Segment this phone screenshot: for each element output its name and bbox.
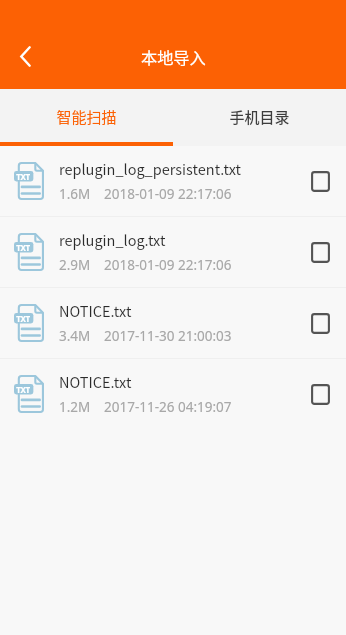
staticText: TXT	[16, 242, 30, 253]
button[interactable]: Select file	[297, 229, 343, 275]
staticText: 1.2M	[59, 398, 91, 416]
button[interactable]: Back	[1, 32, 49, 80]
staticText: 2.9M	[59, 256, 91, 274]
staticText: 本地导入	[141, 45, 206, 68]
button[interactable]: 手机目录	[173, 89, 346, 146]
button[interactable]: Select file	[297, 300, 343, 346]
staticText: 2018-01-09 22:17:06	[104, 256, 232, 274]
staticText: 2018-01-09 22:17:06	[104, 185, 232, 203]
staticText: NOTICE.txt	[59, 300, 132, 321]
staticText: TXT	[16, 313, 30, 324]
button[interactable]: Select file	[297, 158, 343, 204]
staticText: 手机目录	[229, 106, 290, 128]
staticText: 2017-11-26 04:19:07	[104, 398, 232, 416]
staticText: 2017-11-30 21:00:03	[104, 327, 232, 345]
button[interactable]: TXT	[0, 217, 346, 288]
staticText: replugin_log_persistent.txt	[59, 158, 242, 179]
staticText: 1.6M	[59, 185, 91, 203]
staticText: 智能扫描	[56, 106, 117, 128]
staticText: replugin_log.txt	[59, 229, 166, 250]
button[interactable]: Select file	[297, 371, 343, 417]
staticText: NOTICE.txt	[59, 371, 132, 392]
button[interactable]: TXT	[0, 288, 346, 359]
button[interactable]: 智能扫描	[0, 89, 173, 146]
button[interactable]: TXT	[0, 359, 346, 430]
staticText: TXT	[16, 384, 30, 395]
staticText: TXT	[16, 171, 30, 182]
staticText: 3.4M	[59, 327, 91, 345]
button[interactable]: TXT	[0, 146, 346, 217]
